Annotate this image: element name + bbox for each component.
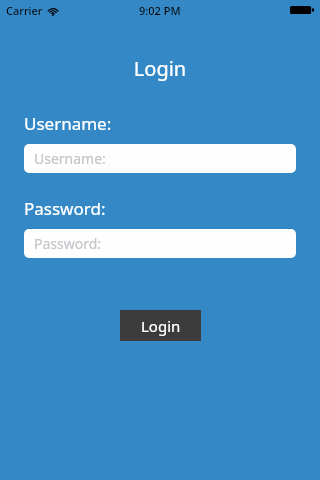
staticText: Username:: [24, 112, 112, 135]
button[interactable]: Username:: [24, 144, 296, 173]
staticText: Username:: [34, 149, 106, 168]
staticText: Login: [141, 316, 181, 336]
staticText: Password:: [24, 197, 106, 220]
staticText: 9:02 PM: [139, 3, 181, 18]
staticText: Login: [0, 55, 320, 82]
button[interactable]: Password:: [24, 229, 296, 258]
button[interactable]: Login: [120, 310, 201, 341]
staticText: Carrier: [6, 3, 43, 18]
staticText: Password:: [34, 234, 102, 253]
